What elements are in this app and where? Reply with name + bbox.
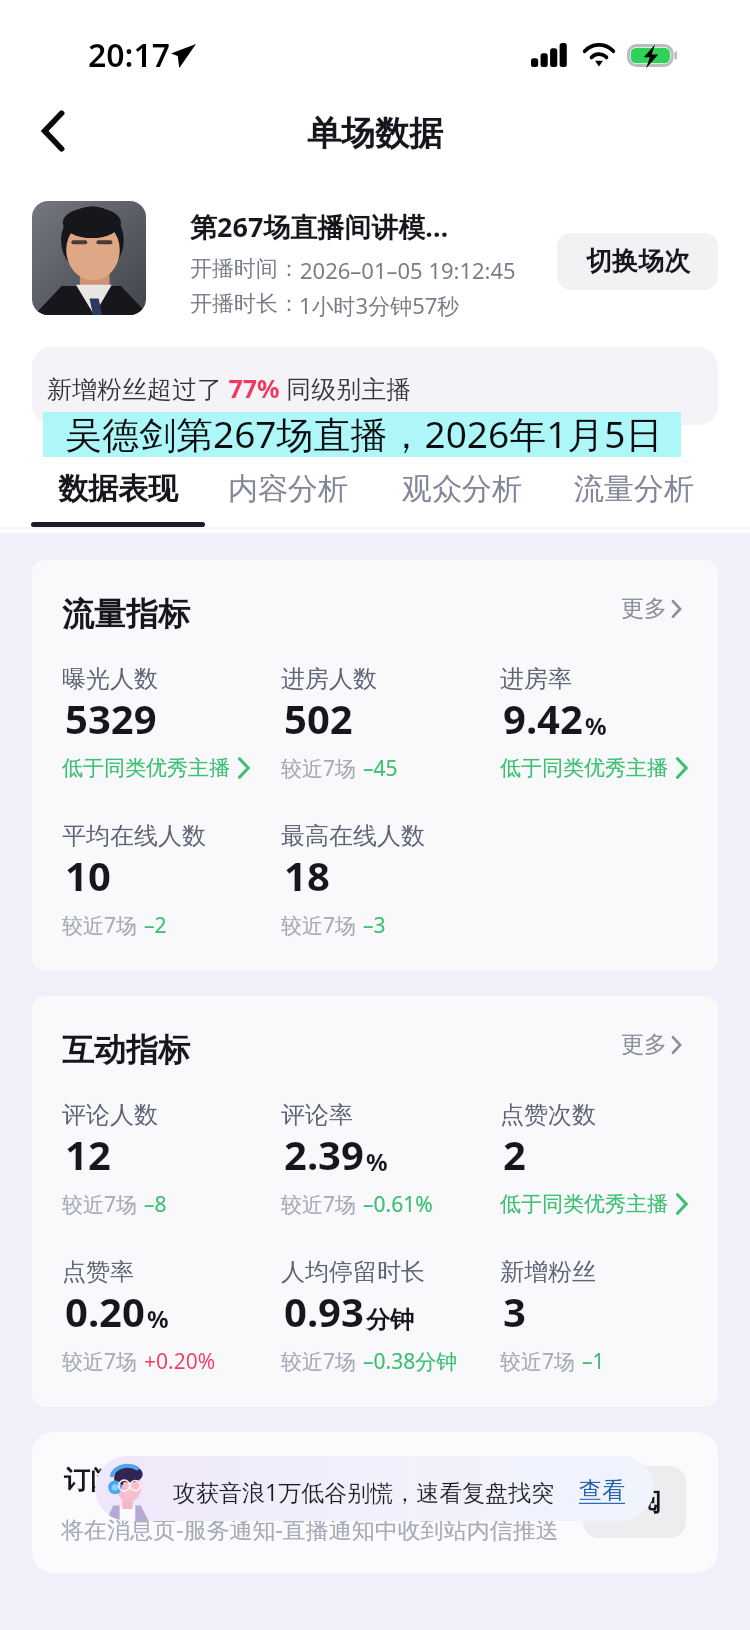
staticText: 较近7场: [281, 1190, 357, 1219]
button[interactable]: 低于同类优秀主播: [62, 754, 246, 782]
staticText: %: [366, 1145, 388, 1178]
staticText: 2.39: [284, 1127, 364, 1181]
button[interactable]: 低于同类优秀主播: [500, 754, 684, 782]
staticText: –0.61%: [363, 1190, 433, 1219]
staticText: 9.42: [503, 691, 583, 745]
staticText: 最高在线人数: [281, 821, 425, 851]
staticText: 低于同类优秀主播: [500, 755, 668, 781]
button[interactable]: 内容分析: [201, 462, 375, 527]
staticText: 较近7场: [62, 1190, 138, 1219]
staticText: 评论率: [281, 1100, 353, 1130]
button[interactable]: 低于同类优秀主播: [500, 1190, 684, 1218]
staticText: 5329: [65, 691, 157, 745]
staticText: 0.20: [65, 1284, 145, 1338]
button[interactable]: 订阅: [583, 1466, 686, 1538]
button[interactable]: 攻获音浪1万低谷别慌，速看复盘找突破: [95, 1456, 654, 1521]
staticText: 较近7场: [281, 1347, 357, 1376]
staticText: 进房人数: [281, 664, 377, 694]
staticText: 较近7场: [62, 911, 138, 940]
staticText: 低于同类优秀主播: [62, 755, 230, 781]
staticText: 曝光人数: [62, 664, 158, 694]
staticText: 3: [503, 1284, 526, 1338]
staticText: 较近7场: [62, 1347, 138, 1376]
staticText: 1小时3分钟57秒: [299, 290, 460, 320]
staticText: –3: [363, 911, 386, 940]
staticText: 平均在线人数: [62, 821, 206, 851]
staticText: 攻获音浪1万低谷别慌，速看复盘找突破: [173, 1476, 570, 1508]
staticText: 较近7场: [281, 911, 357, 940]
button[interactable]: 观众分析: [375, 462, 549, 527]
staticText: 内容分析: [228, 470, 348, 508]
staticText: 2026–01–05 19:12:45: [300, 255, 516, 285]
button[interactable]: 更多: [621, 594, 680, 623]
staticText: 第267场直播间讲模…: [190, 208, 449, 245]
staticText: 12: [65, 1127, 111, 1181]
staticText: 较近7场: [500, 1347, 576, 1376]
staticText: –1: [582, 1347, 605, 1376]
staticText: 点赞率: [62, 1257, 134, 1287]
staticText: 开播时长：: [190, 290, 300, 318]
staticText: 低于同类优秀主播: [500, 1191, 668, 1217]
staticText: 更多: [621, 594, 667, 623]
staticText: 互动指标: [62, 1030, 190, 1070]
staticText: 将在消息页-服务通知-直播通知中收到站内信推送: [61, 1513, 559, 1544]
button[interactable]: 切换场次: [557, 233, 718, 290]
staticText: 分钟: [366, 1305, 414, 1335]
button[interactable]: 新增粉丝超过了 77% 同级别主播: [32, 347, 718, 425]
staticText: 20:17: [88, 33, 171, 77]
staticText: 查看: [579, 1476, 625, 1505]
staticText: 新增粉丝超过了 77% 同级别主播: [47, 371, 412, 405]
staticText: 吴德剑第267场直播，2026年1月5日: [65, 408, 663, 459]
staticText: %: [147, 1302, 169, 1335]
staticText: 10: [65, 848, 111, 902]
staticText: 切换场次: [586, 245, 690, 278]
button[interactable]: 流量分析: [547, 462, 721, 527]
staticText: 数据表现: [58, 470, 178, 508]
staticText: 18: [284, 848, 330, 902]
button[interactable]: [32, 1432, 718, 1573]
button[interactable]: 更多: [621, 1030, 680, 1059]
staticText: 评论人数: [62, 1100, 158, 1130]
staticText: 订阅: [609, 1486, 661, 1519]
staticText: 流量分析: [574, 470, 694, 508]
button[interactable]: 数据表现: [31, 462, 205, 527]
staticText: 新增粉丝: [500, 1257, 596, 1287]
staticText: 点赞次数: [500, 1100, 596, 1130]
staticText: –0.38分钟: [363, 1347, 458, 1376]
staticText: 0.93: [284, 1284, 364, 1338]
staticText: 订阅开播提醒: [64, 1464, 220, 1497]
button[interactable]: Back: [26, 104, 80, 158]
staticText: 更多: [621, 1030, 667, 1059]
staticText: 开播时间：: [190, 255, 300, 283]
staticText: %: [585, 709, 607, 742]
staticText: –2: [144, 911, 167, 940]
staticText: 进房率: [500, 664, 572, 694]
staticText: 单场数据: [307, 112, 443, 155]
staticText: 较近7场: [281, 754, 357, 783]
staticText: +0.20%: [144, 1347, 216, 1376]
staticText: 2: [503, 1127, 526, 1181]
staticText: 观众分析: [402, 470, 522, 508]
staticText: –45: [363, 754, 398, 783]
staticText: 流量指标: [62, 594, 190, 634]
staticText: –8: [144, 1190, 167, 1219]
staticText: 502: [284, 691, 353, 745]
staticText: 人均停留时长: [281, 1257, 425, 1287]
